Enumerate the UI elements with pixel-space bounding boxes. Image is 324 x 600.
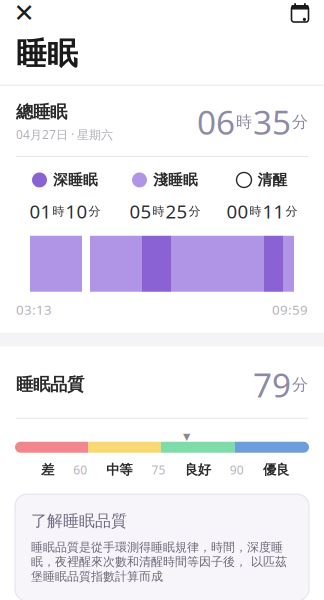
staticText: 03:13: [16, 301, 52, 318]
staticText: 10: [65, 199, 87, 224]
staticText: 良好: [185, 462, 211, 478]
staticText: 清醒: [257, 171, 287, 189]
staticText: 60: [73, 462, 87, 478]
staticText: 06: [197, 100, 235, 144]
staticText: 75: [151, 462, 165, 478]
staticText: 睡眠: [16, 35, 78, 73]
staticText: 09:59: [272, 301, 308, 318]
staticText: 時: [52, 204, 64, 219]
staticText: 優良: [263, 462, 289, 478]
staticText: 時: [249, 204, 261, 219]
staticText: 中等: [106, 462, 132, 478]
staticText: 時: [236, 112, 252, 132]
staticText: 05: [129, 199, 151, 224]
staticText: 了解睡眠品質: [31, 511, 127, 531]
staticText: 35: [253, 100, 291, 144]
staticText: 睡眠品質: [16, 374, 84, 395]
staticText: 分: [285, 204, 297, 219]
staticText: 79: [253, 362, 291, 407]
staticText: 00: [226, 199, 248, 224]
button[interactable]: Close: [4, 0, 44, 29]
staticText: 90: [230, 462, 244, 478]
staticText: 01: [29, 199, 51, 224]
staticText: 淺睡眠: [153, 171, 198, 189]
staticText: 04月27日 · 星期六: [16, 126, 113, 142]
staticText: 睡眠品質是從手環測得睡眠規律，時間，深度睡眠，夜裡醒來次數和清醒時間等因子後， …: [31, 540, 287, 584]
staticText: 時: [152, 204, 164, 219]
staticText: ✕: [13, 0, 34, 27]
staticText: 25: [165, 199, 187, 224]
staticText: 差: [41, 462, 54, 478]
staticText: 總睡眠: [16, 101, 67, 122]
staticText: ▾: [183, 428, 190, 444]
staticText: 深睡眠: [53, 171, 98, 189]
staticText: 11: [262, 199, 284, 224]
staticText: 分: [292, 112, 308, 132]
staticText: 分: [292, 375, 308, 394]
button[interactable]: Calendar: [280, 0, 320, 29]
staticText: 分: [188, 204, 200, 219]
staticText: 分: [88, 204, 100, 219]
